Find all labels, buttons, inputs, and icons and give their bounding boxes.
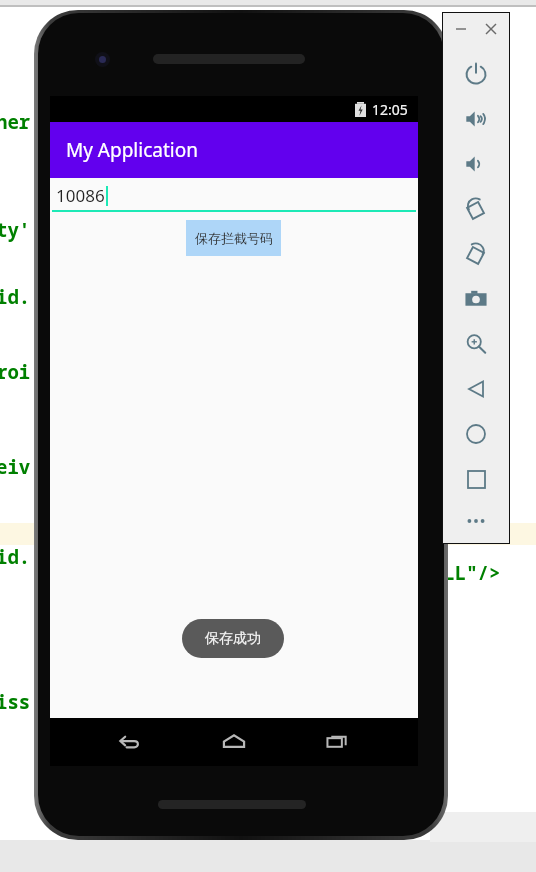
staticText: 12:05 xyxy=(372,100,408,119)
button[interactable]: Home xyxy=(442,412,510,456)
button[interactable]: Home xyxy=(204,718,264,766)
staticText: her xyxy=(0,109,31,135)
button[interactable]: More xyxy=(442,499,510,543)
button[interactable]: Zoom xyxy=(442,322,510,366)
staticText: 保存成功 xyxy=(205,630,261,648)
button[interactable]: 保存拦截号码 xyxy=(186,220,281,256)
staticText: My Application xyxy=(66,137,198,163)
button[interactable]: Minimize xyxy=(452,20,470,38)
button[interactable]: Recents xyxy=(308,718,368,766)
button[interactable]: Rotate right xyxy=(442,232,510,276)
button[interactable]: Volume down xyxy=(442,142,510,186)
button[interactable]: Overview xyxy=(442,457,510,501)
button[interactable]: Back xyxy=(99,718,159,766)
staticText: ty' xyxy=(0,217,31,243)
button[interactable]: Close xyxy=(482,20,500,38)
button[interactable]: Take screenshot xyxy=(442,277,510,321)
staticText: id. xyxy=(0,284,31,310)
button[interactable]: 10086 xyxy=(52,180,416,212)
staticText: id. xyxy=(0,544,31,570)
staticText: eiv xyxy=(0,454,31,480)
staticText: 保存拦截号码 xyxy=(195,230,273,246)
button[interactable]: Back xyxy=(442,367,510,411)
staticText: iss xyxy=(0,689,31,715)
button[interactable]: Volume up xyxy=(442,97,510,141)
staticText: 10086 xyxy=(56,184,105,207)
button[interactable]: Power xyxy=(442,52,510,96)
staticText: ALL"/> xyxy=(432,560,501,586)
button[interactable]: Rotate left xyxy=(442,187,510,231)
staticText: roi xyxy=(0,359,31,385)
